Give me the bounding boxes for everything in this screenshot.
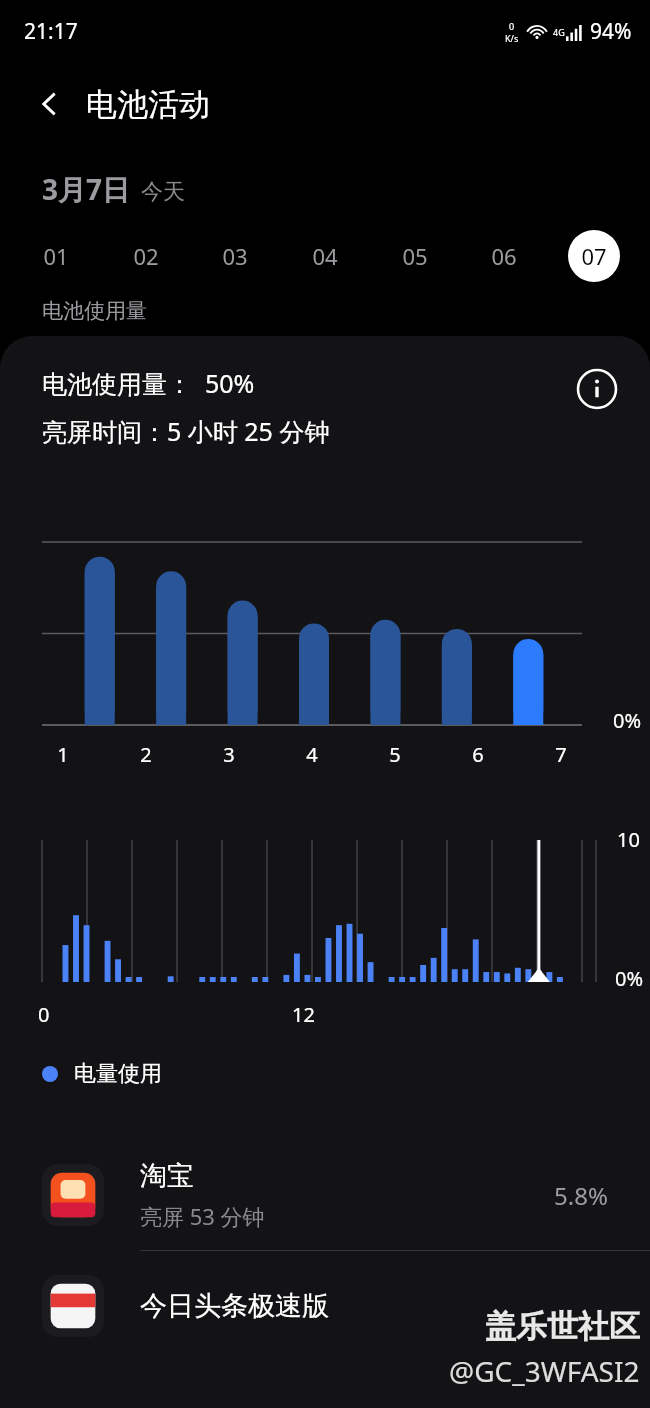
staticText: 05 — [402, 241, 428, 271]
staticText: 亮屏 53 分钟 — [140, 1201, 265, 1231]
staticText: K/s — [505, 32, 519, 44]
staticText: 03 — [222, 241, 248, 271]
button[interactable]: Information — [574, 366, 620, 412]
staticText: 电池使用量： 50% — [42, 366, 255, 400]
staticText: 02 — [133, 241, 159, 271]
staticText: 2 — [140, 741, 152, 768]
button[interactable]: 05 — [389, 230, 441, 282]
staticText: 04 — [312, 241, 338, 271]
staticText: 亮屏时间：5 小时 25 分钟 — [42, 414, 330, 448]
button[interactable]: Back — [28, 82, 72, 126]
staticText: 4 — [306, 741, 318, 768]
button[interactable]: 04 — [299, 230, 351, 282]
staticText: 06 — [491, 241, 517, 271]
staticText: 电池使用量 — [42, 298, 147, 324]
staticText: 0% — [613, 707, 642, 734]
staticText: 10 — [617, 826, 640, 853]
staticText: 今日头条极速版 — [140, 1289, 329, 1323]
staticText: 3 — [223, 741, 235, 768]
staticText: @GC_3WFASI2 — [449, 1352, 640, 1390]
button[interactable]: 03 — [209, 230, 261, 282]
staticText: 0 — [38, 1001, 50, 1028]
button[interactable]: 06 — [478, 230, 530, 282]
staticText: 6 — [472, 741, 484, 768]
staticText: 4G — [553, 26, 565, 38]
staticText: 盖乐世社区 — [485, 1307, 640, 1346]
staticText: 7 — [555, 741, 567, 768]
staticText: 0 — [509, 20, 515, 32]
staticText: 01 — [43, 241, 69, 271]
staticText: 电量使用 — [74, 1060, 162, 1088]
staticText: 1 — [57, 741, 69, 768]
staticText: 21:17 — [24, 17, 78, 46]
staticText: 5.8% — [554, 1179, 608, 1212]
staticText: 0% — [615, 965, 644, 992]
button[interactable]: 01 — [30, 230, 82, 282]
staticText: 5 — [389, 741, 401, 768]
staticText: 94% — [590, 17, 632, 46]
staticText: 12 — [292, 1001, 315, 1028]
button[interactable]: 07 — [568, 230, 620, 282]
button[interactable]: 02 — [120, 230, 172, 282]
staticText: 今天 — [141, 178, 185, 206]
button[interactable]: 电量使用 — [42, 1060, 162, 1088]
staticText: 淘宝 — [140, 1159, 194, 1193]
button[interactable]: Back — [0, 62, 650, 146]
staticText: 电池活动 — [86, 85, 210, 124]
button[interactable]: 今日头条极速版 — [0, 1251, 650, 1361]
staticText: 3月7日 — [42, 170, 131, 208]
button[interactable]: 淘宝 — [0, 1140, 650, 1250]
staticText: 07 — [581, 241, 607, 271]
